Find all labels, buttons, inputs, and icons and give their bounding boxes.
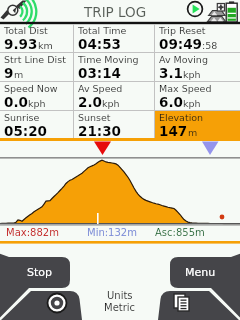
button[interactable]: Trip Reset bbox=[155, 24, 240, 52]
staticText: 05:20 bbox=[4, 123, 47, 139]
staticText: Asc:855m bbox=[155, 227, 205, 239]
button[interactable]: Av Moving bbox=[155, 53, 240, 81]
staticText: Time Moving bbox=[78, 54, 139, 65]
button[interactable]: Strt Line Dist bbox=[0, 53, 73, 81]
staticText: Total Time bbox=[78, 25, 127, 36]
button[interactable]: Mark waypoint bbox=[0, 291, 82, 320]
staticText: Max:882m bbox=[6, 227, 59, 239]
staticText: Max Speed bbox=[159, 83, 212, 94]
button[interactable]: Speed Now bbox=[0, 82, 73, 110]
staticText: 147 bbox=[159, 123, 188, 139]
staticText: Strt Line Dist bbox=[4, 54, 66, 65]
staticText: TRIP LOG bbox=[84, 4, 147, 20]
staticText: kph bbox=[183, 98, 201, 109]
staticText: Speed Now bbox=[4, 83, 58, 94]
staticText: Metric bbox=[104, 302, 136, 314]
staticText: km bbox=[38, 40, 53, 51]
button[interactable]: Time Moving bbox=[74, 53, 154, 81]
staticText: 09:49 bbox=[159, 36, 202, 52]
staticText: Min:132m bbox=[87, 227, 137, 239]
staticText: kph bbox=[183, 69, 201, 80]
button[interactable]: Total Time bbox=[74, 24, 154, 52]
button[interactable]: Elevation bbox=[155, 111, 240, 139]
staticText: 3.1 bbox=[159, 65, 183, 81]
button[interactable]: Sunset bbox=[74, 111, 154, 139]
button[interactable]: Stop bbox=[9, 257, 70, 288]
staticText: Trip Reset bbox=[159, 25, 206, 36]
staticText: 6.0 bbox=[159, 94, 183, 110]
button[interactable]: Av Speed bbox=[74, 82, 154, 110]
staticText: kph bbox=[102, 98, 120, 109]
staticText: 04:53 bbox=[78, 36, 121, 52]
button[interactable]: Sunrise bbox=[0, 111, 73, 139]
staticText: Sunset bbox=[78, 112, 111, 123]
staticText: Stop bbox=[27, 266, 53, 279]
staticText: Units bbox=[107, 290, 133, 302]
staticText: Sunrise bbox=[4, 112, 40, 123]
staticText: Elevation bbox=[159, 112, 204, 123]
staticText: Av Speed bbox=[78, 83, 123, 94]
staticText: Av Moving bbox=[159, 54, 208, 65]
staticText: 03:14 bbox=[78, 65, 121, 81]
staticText: 21:30 bbox=[78, 123, 121, 139]
staticText: m bbox=[14, 69, 24, 80]
staticText: Total Dist bbox=[4, 25, 48, 36]
staticText: kph bbox=[28, 98, 46, 109]
staticText: Menu bbox=[185, 266, 216, 279]
staticText: m bbox=[188, 127, 198, 138]
staticText: 0.0 bbox=[4, 94, 28, 110]
button[interactable]: Max Speed bbox=[155, 82, 240, 110]
button[interactable]: Total Dist bbox=[0, 24, 73, 52]
button[interactable]: Menu bbox=[170, 257, 231, 288]
button[interactable]: Pages bbox=[158, 291, 240, 320]
staticText: 2.0 bbox=[78, 94, 102, 110]
staticText: 9.93 bbox=[4, 36, 38, 52]
staticText: :58 bbox=[202, 40, 218, 51]
staticText: 9 bbox=[4, 65, 14, 81]
